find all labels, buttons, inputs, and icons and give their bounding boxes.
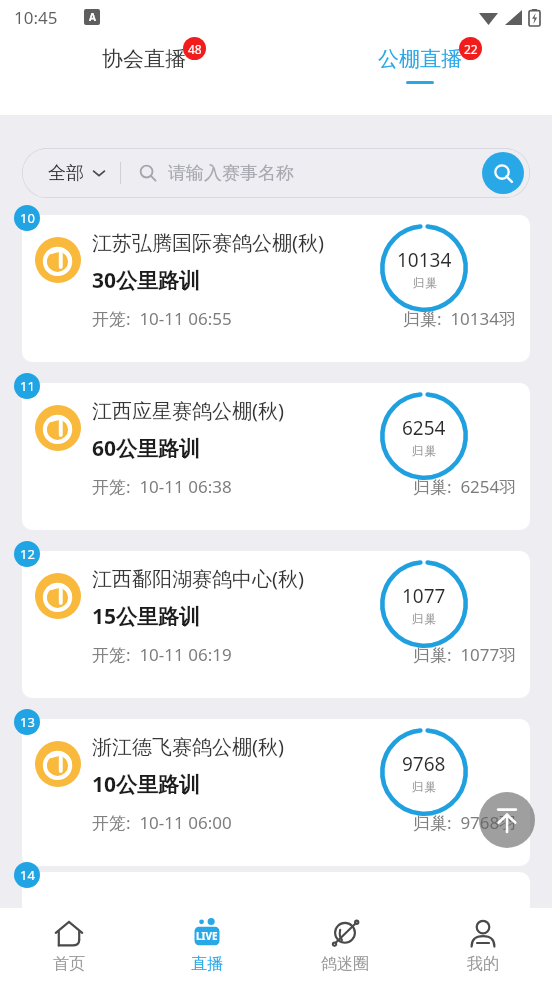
staticText: 全部 [48,162,84,185]
button[interactable]: Search [482,152,524,194]
staticText: 开笼: 10-11 06:00 [92,811,232,834]
staticText: 开笼: 10-11 06:55 [92,307,232,330]
staticText: 归巢 [413,275,437,290]
staticText: 江苏弘腾国际赛鸽公棚(秋) [92,229,324,256]
staticText: 归巢 [412,611,436,626]
staticText: 30公里路训 [92,266,201,295]
button[interactable] [22,872,530,917]
staticText: 归巢: 10134羽 [403,307,517,330]
staticText: 10公里路训 [92,770,201,799]
staticText: 6254 [402,415,446,441]
staticText: 开笼: 10-11 06:38 [92,475,232,498]
button[interactable]: 江西鄱阳湖赛鸽中心(秋) [22,551,530,698]
staticText: 10:45 [14,6,58,29]
staticText: 13 [20,713,35,731]
staticText: 15公里路训 [92,602,201,631]
staticText: 首页 [53,954,85,974]
staticText: 归巢: 9768羽 [413,811,517,834]
button[interactable]: 江西应星赛鸽公棚(秋) [22,383,530,530]
staticText: 归巢 [412,443,436,458]
staticText: 48 [188,41,202,57]
staticText: 22 [464,41,478,57]
staticText: 归巢: 1077羽 [413,643,517,666]
staticText: 江西应星赛鸽公棚(秋) [92,397,284,424]
staticText: 开笼: 10-11 06:19 [92,643,232,666]
button[interactable]: 浙江德飞赛鸽公棚(秋) [22,719,530,866]
staticText: 归巢 [412,779,436,794]
staticText: 直播 [191,954,223,974]
button[interactable]: LIVE [138,908,276,983]
staticText: 9768 [402,751,446,777]
staticText: LIVE [196,929,218,943]
staticText: 60公里路训 [92,434,201,463]
staticText: 14 [20,866,35,884]
staticText: 公棚直播 [378,46,462,72]
button[interactable]: 鸽迷圈 [276,908,414,983]
staticText: 10 [20,209,35,227]
button[interactable]: 公棚直播 [332,46,508,84]
staticText: 11 [20,377,35,395]
staticText: 鸽迷圈 [321,954,369,974]
button[interactable]: 协会直播 [56,46,232,81]
staticText: 10134 [397,247,452,273]
button[interactable]: Scroll to top [479,792,535,848]
button[interactable]: 全部 [22,148,530,198]
staticText: 协会直播 [102,46,186,72]
button[interactable]: 我的 [414,908,552,983]
staticText: 浙江德飞赛鸽公棚(秋) [92,733,284,760]
staticText: A [89,10,96,24]
staticText: 江西鄱阳湖赛鸽中心(秋) [92,565,304,592]
staticText: 请输入赛事名称 [168,162,294,185]
button[interactable]: 首页 [0,908,138,983]
staticText: 我的 [467,954,499,974]
staticText: 1077 [402,583,446,609]
staticText: 归巢: 6254羽 [413,475,517,498]
button[interactable]: 江苏弘腾国际赛鸽公棚(秋) [22,215,530,362]
staticText: 12 [20,545,35,563]
